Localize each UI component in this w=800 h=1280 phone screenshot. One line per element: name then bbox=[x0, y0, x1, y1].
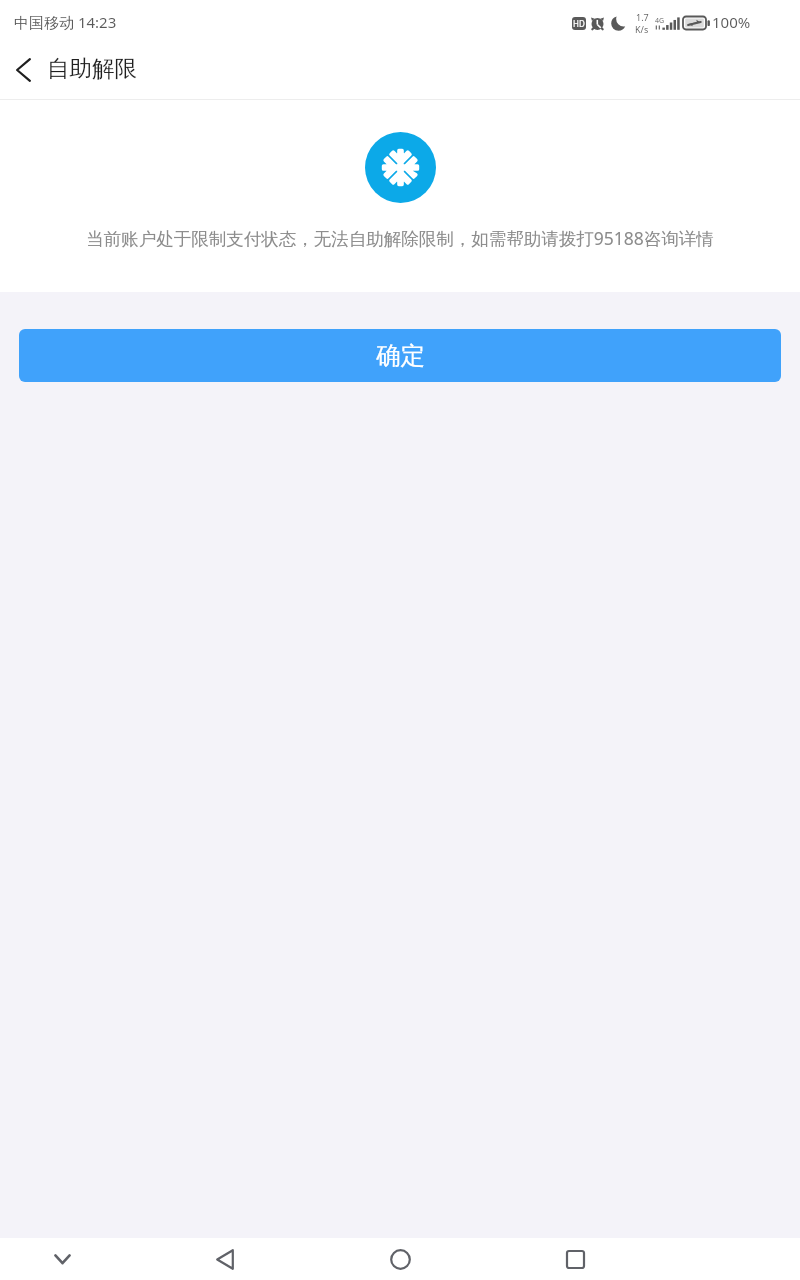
button[interactable]: 确定 bbox=[19, 329, 781, 382]
staticText: HD bbox=[573, 18, 585, 29]
staticText: 4G bbox=[655, 16, 665, 26]
button[interactable]: 返回 bbox=[190, 1238, 260, 1280]
staticText: 1.7 bbox=[636, 11, 649, 23]
staticText: 100% bbox=[712, 12, 751, 32]
button[interactable]: 最近任务 bbox=[540, 1238, 610, 1280]
button[interactable]: 收起键盘 bbox=[27, 1238, 97, 1280]
staticText: 当前账户处于限制支付状态，无法自助解除限制，如需帮助请拨打95188咨询详情 bbox=[86, 226, 714, 250]
staticText: K/s bbox=[635, 23, 649, 35]
button[interactable]: 返回 bbox=[0, 46, 47, 99]
staticText: 确定 bbox=[376, 340, 425, 371]
button[interactable]: 主页 bbox=[365, 1238, 435, 1280]
staticText: 中国移动 14:23 bbox=[14, 12, 117, 32]
staticText: 自助解限 bbox=[47, 54, 137, 82]
